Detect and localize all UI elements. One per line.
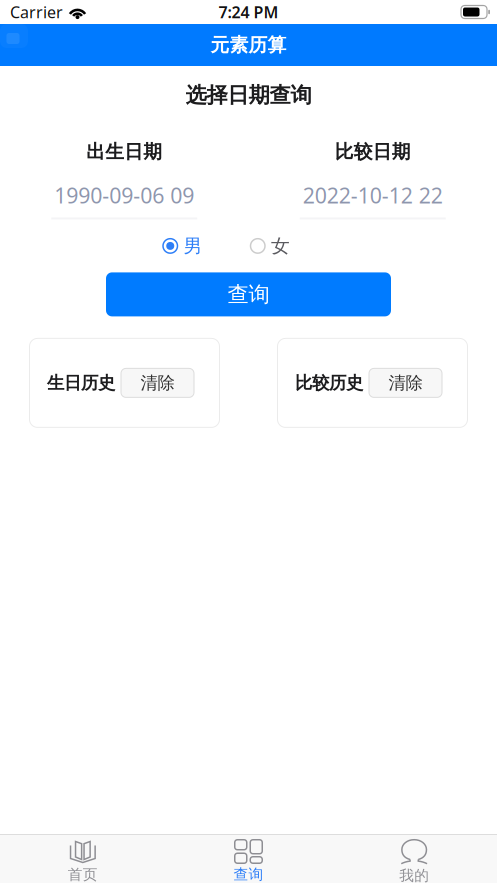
- staticText: 生日历史: [47, 372, 115, 393]
- button[interactable]: 查询: [106, 272, 391, 316]
- staticText: 查询: [233, 865, 263, 883]
- button[interactable]: 查询: [166, 835, 331, 883]
- button[interactable]: 我的: [331, 835, 497, 883]
- staticText: 查询: [227, 281, 269, 307]
- button[interactable]: 首页: [0, 835, 166, 883]
- staticText: 出生日期: [86, 140, 162, 163]
- staticText: 选择日期查询: [185, 82, 311, 108]
- button[interactable]: 2022-10-12 22: [293, 181, 453, 219]
- staticText: 首页: [68, 865, 98, 883]
- button[interactable]: 女: [250, 234, 290, 257]
- staticText: 清除: [140, 372, 174, 393]
- button[interactable]: Back: [0, 24, 28, 48]
- staticText: 7:24 PM: [218, 1, 278, 23]
- staticText: 女: [271, 234, 290, 257]
- staticText: 1990-09-06 09: [54, 181, 194, 209]
- staticText: 元素历算: [210, 33, 286, 56]
- button[interactable]: 清除: [121, 368, 194, 397]
- staticText: 清除: [388, 372, 422, 393]
- staticText: 比较日期: [335, 140, 411, 163]
- staticText: 2022-10-12 22: [303, 181, 443, 209]
- staticText: 我的: [399, 866, 429, 883]
- staticText: Carrier: [10, 1, 63, 23]
- button[interactable]: 清除: [369, 368, 442, 397]
- staticText: 男: [183, 234, 202, 257]
- button[interactable]: 1990-09-06 09: [44, 181, 204, 219]
- staticText: 比较历史: [295, 372, 363, 393]
- button[interactable]: 男: [163, 234, 202, 257]
